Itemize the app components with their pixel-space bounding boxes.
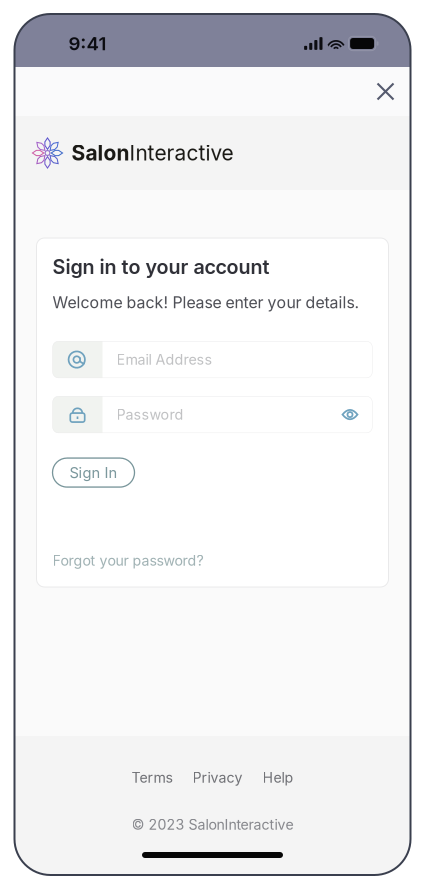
button[interactable]: Sign In xyxy=(52,458,134,487)
staticText: SalonInteractive xyxy=(71,141,233,165)
staticText: Sign In xyxy=(69,464,117,481)
button[interactable]: Forgot your password? xyxy=(52,552,203,569)
staticText: Terms xyxy=(131,769,172,786)
staticText: Sign in to your account xyxy=(52,255,269,279)
button[interactable]: Help xyxy=(252,769,303,786)
staticText: Forgot your password? xyxy=(52,552,203,569)
staticText: © 2023 SalonInteractive xyxy=(131,816,293,833)
staticText: Welcome back! Please enter your details. xyxy=(52,293,359,312)
staticText: Password xyxy=(116,406,183,423)
button[interactable]: Terms xyxy=(121,769,182,786)
staticText: Help xyxy=(262,769,293,786)
button[interactable]: Privacy xyxy=(182,769,252,786)
staticText: 9:41 xyxy=(68,32,106,55)
staticText: Privacy xyxy=(192,769,242,786)
staticText: Email Address xyxy=(116,351,212,368)
button[interactable]: Close xyxy=(368,74,402,108)
